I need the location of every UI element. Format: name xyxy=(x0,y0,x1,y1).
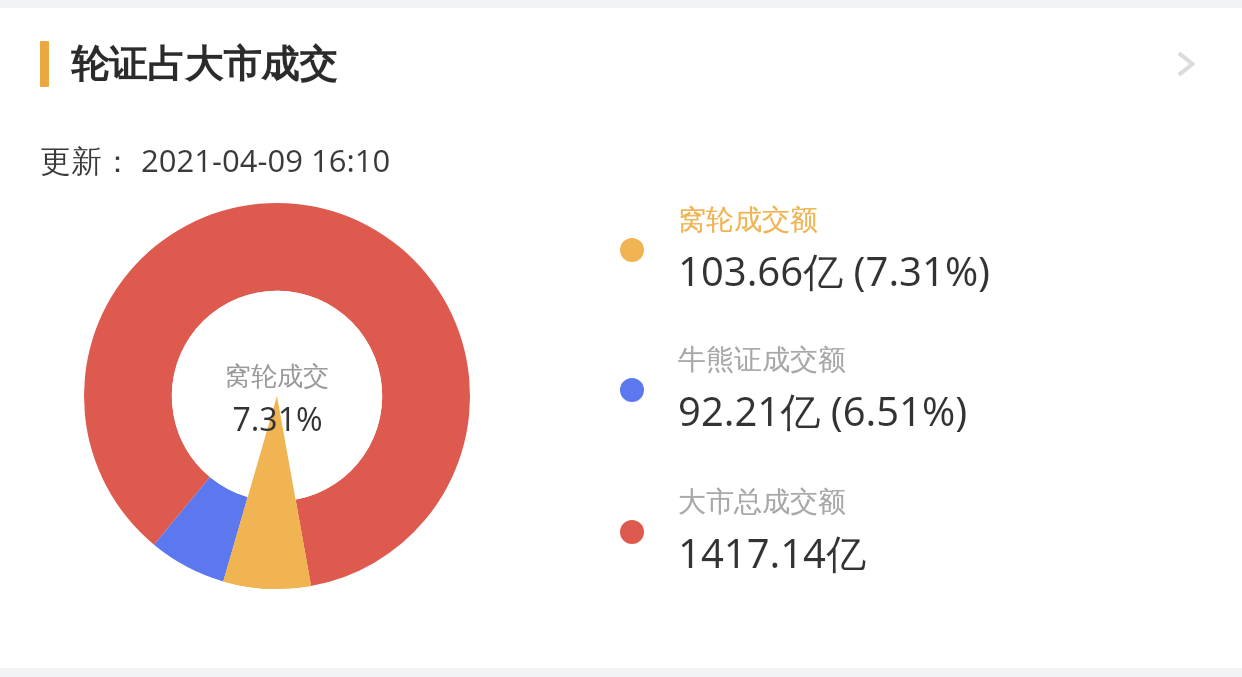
staticText: 92.21亿 (6.51%) xyxy=(678,383,968,438)
staticText: 103.66亿 (7.31%) xyxy=(678,243,991,298)
staticText: 1417.14亿 xyxy=(678,525,866,580)
button[interactable]: 大市总成交额 xyxy=(620,472,1180,592)
button[interactable]: 轮证占大市成交 xyxy=(0,8,1242,120)
staticText: 轮证占大市成交 xyxy=(71,40,337,88)
button[interactable]: 窝轮成交额 xyxy=(620,190,1180,310)
staticText: 窝轮成交 xyxy=(225,360,329,393)
staticText: 牛熊证成交额 xyxy=(678,342,846,377)
staticText: 大市总成交额 xyxy=(678,484,846,519)
staticText: 更新： 2021-04-09 16:10 xyxy=(40,139,391,181)
button[interactable]: More details xyxy=(1158,36,1214,92)
staticText: 7.31% xyxy=(232,397,323,441)
button[interactable]: 牛熊证成交额 xyxy=(620,330,1180,450)
staticText: 窝轮成交额 xyxy=(678,202,818,237)
